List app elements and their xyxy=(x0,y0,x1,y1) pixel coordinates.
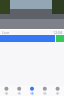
button[interactable]: Tab xyxy=(51,87,64,95)
staticText: Live xyxy=(2,30,9,35)
staticText: Tab xyxy=(30,92,34,95)
staticText: Tab xyxy=(56,92,60,95)
button[interactable]: Tab xyxy=(13,87,26,95)
button[interactable]: Tab xyxy=(0,87,13,95)
staticText: 12:04 xyxy=(53,30,62,35)
staticText: Tab xyxy=(43,92,47,95)
button[interactable]: Tab xyxy=(26,87,38,95)
staticText: Tab xyxy=(4,92,8,95)
button[interactable]: Tab xyxy=(38,87,51,95)
staticText: Tab xyxy=(17,92,21,95)
